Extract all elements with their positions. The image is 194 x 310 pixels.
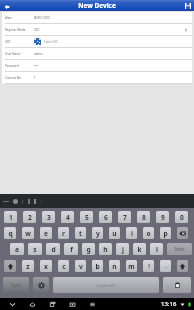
button[interactable]: t <box>75 227 86 239</box>
staticText: UID <box>34 28 40 32</box>
staticText: Alias <box>5 16 34 20</box>
staticText: q <box>8 229 13 238</box>
staticText: x <box>44 262 48 271</box>
staticText: s <box>33 245 37 254</box>
button[interactable]: c <box>58 260 69 272</box>
button[interactable]: 0 <box>175 211 188 223</box>
button[interactable]: r <box>58 227 69 239</box>
staticText: a <box>15 245 19 254</box>
staticText: New Device <box>78 1 116 10</box>
button[interactable]: Next <box>167 243 192 255</box>
staticText: 1 <box>34 76 36 80</box>
button[interactable]: Screenshot <box>68 300 77 309</box>
staticText: English(UK) <box>96 283 116 288</box>
staticText: Register Mode <box>5 28 34 32</box>
staticText: m <box>128 262 135 271</box>
staticText: i <box>131 229 133 238</box>
staticText: 6 <box>104 213 108 222</box>
button[interactable]: 5 <box>80 211 93 223</box>
staticText: . <box>165 262 167 270</box>
button[interactable]: ! <box>143 260 154 272</box>
button[interactable]: p <box>160 227 171 239</box>
button[interactable]: Camera No. <box>2 72 192 84</box>
button[interactable]: Shift <box>4 260 16 272</box>
staticText: g <box>86 245 91 254</box>
button[interactable]: Backspace <box>177 227 188 239</box>
staticText: j <box>122 245 124 254</box>
button[interactable]: o <box>143 227 154 239</box>
button[interactable]: 7 <box>118 211 131 223</box>
staticText: 4 <box>66 213 70 222</box>
button[interactable]: f <box>64 243 78 255</box>
button[interactable]: b <box>92 260 103 272</box>
staticText: 8 <box>142 213 146 222</box>
button[interactable]: Back <box>2 2 11 11</box>
button[interactable]: Home <box>28 300 37 309</box>
button[interactable]: Sym <box>3 277 29 293</box>
staticText: e <box>44 229 48 238</box>
staticText: Camera No. <box>5 76 34 80</box>
button[interactable]: h <box>99 243 112 255</box>
staticText: z <box>26 262 30 271</box>
staticText: 5 <box>85 213 89 222</box>
button[interactable]: 1 <box>4 211 17 223</box>
staticText: o <box>146 229 151 238</box>
button[interactable]: j <box>116 243 129 255</box>
button[interactable]: q <box>4 227 16 239</box>
button[interactable]: v <box>75 260 86 272</box>
button[interactable]: 8 <box>137 211 150 223</box>
button[interactable]: Settings <box>33 277 49 293</box>
staticText: NVR3-7200 <box>34 16 50 20</box>
button[interactable]: z <box>22 260 34 272</box>
button[interactable]: Recents <box>48 300 57 309</box>
button[interactable]: l <box>150 243 163 255</box>
button[interactable]: s <box>28 243 42 255</box>
button[interactable]: Save <box>184 2 192 10</box>
staticText: k <box>137 245 142 254</box>
button[interactable]: 6 <box>99 211 112 223</box>
button[interactable]: UID <box>2 36 192 48</box>
button[interactable]: x <box>40 260 52 272</box>
button[interactable]: k <box>133 243 146 255</box>
staticText: h <box>103 245 108 254</box>
staticText: User Name <box>5 52 34 56</box>
button[interactable]: 2 <box>23 211 36 223</box>
staticText: •••• <box>34 64 39 68</box>
staticText: d <box>51 245 56 254</box>
button[interactable]: d <box>46 243 60 255</box>
button[interactable]: y <box>92 227 103 239</box>
button[interactable]: a <box>10 243 24 255</box>
button[interactable]: Menu <box>88 300 97 309</box>
staticText: n <box>112 262 117 271</box>
button[interactable]: w <box>22 227 34 239</box>
button[interactable]: Clipboard <box>163 277 191 293</box>
staticText: UID <box>5 40 34 44</box>
button[interactable]: n <box>109 260 120 272</box>
button[interactable]: e <box>40 227 52 239</box>
button[interactable]: Alias <box>2 12 192 24</box>
button[interactable]: English(UK) <box>53 277 159 293</box>
button[interactable]: i <box>126 227 137 239</box>
staticText: y <box>96 229 100 238</box>
button[interactable]: Password <box>2 60 192 72</box>
button[interactable]: Back <box>8 300 17 309</box>
staticText: Enter UID <box>44 40 58 44</box>
button[interactable]: . <box>160 260 171 272</box>
button[interactable]: User Name <box>2 48 192 60</box>
staticText: 1 <box>9 213 13 222</box>
staticText: 0 <box>180 213 184 222</box>
button[interactable]: 9 <box>156 211 169 223</box>
staticText: f <box>70 245 73 254</box>
button[interactable]: 3 <box>42 211 55 223</box>
button[interactable]: u <box>109 227 120 239</box>
button[interactable]: m <box>126 260 137 272</box>
staticText: u <box>112 229 117 238</box>
staticText: t <box>79 229 82 238</box>
button[interactable]: g <box>82 243 95 255</box>
staticText: c <box>62 262 66 271</box>
staticText: r <box>62 229 65 238</box>
button[interactable]: Shift <box>177 260 188 272</box>
button[interactable]: 4 <box>61 211 74 223</box>
staticText: Sym <box>11 282 21 289</box>
button[interactable]: Register Mode <box>2 24 192 36</box>
